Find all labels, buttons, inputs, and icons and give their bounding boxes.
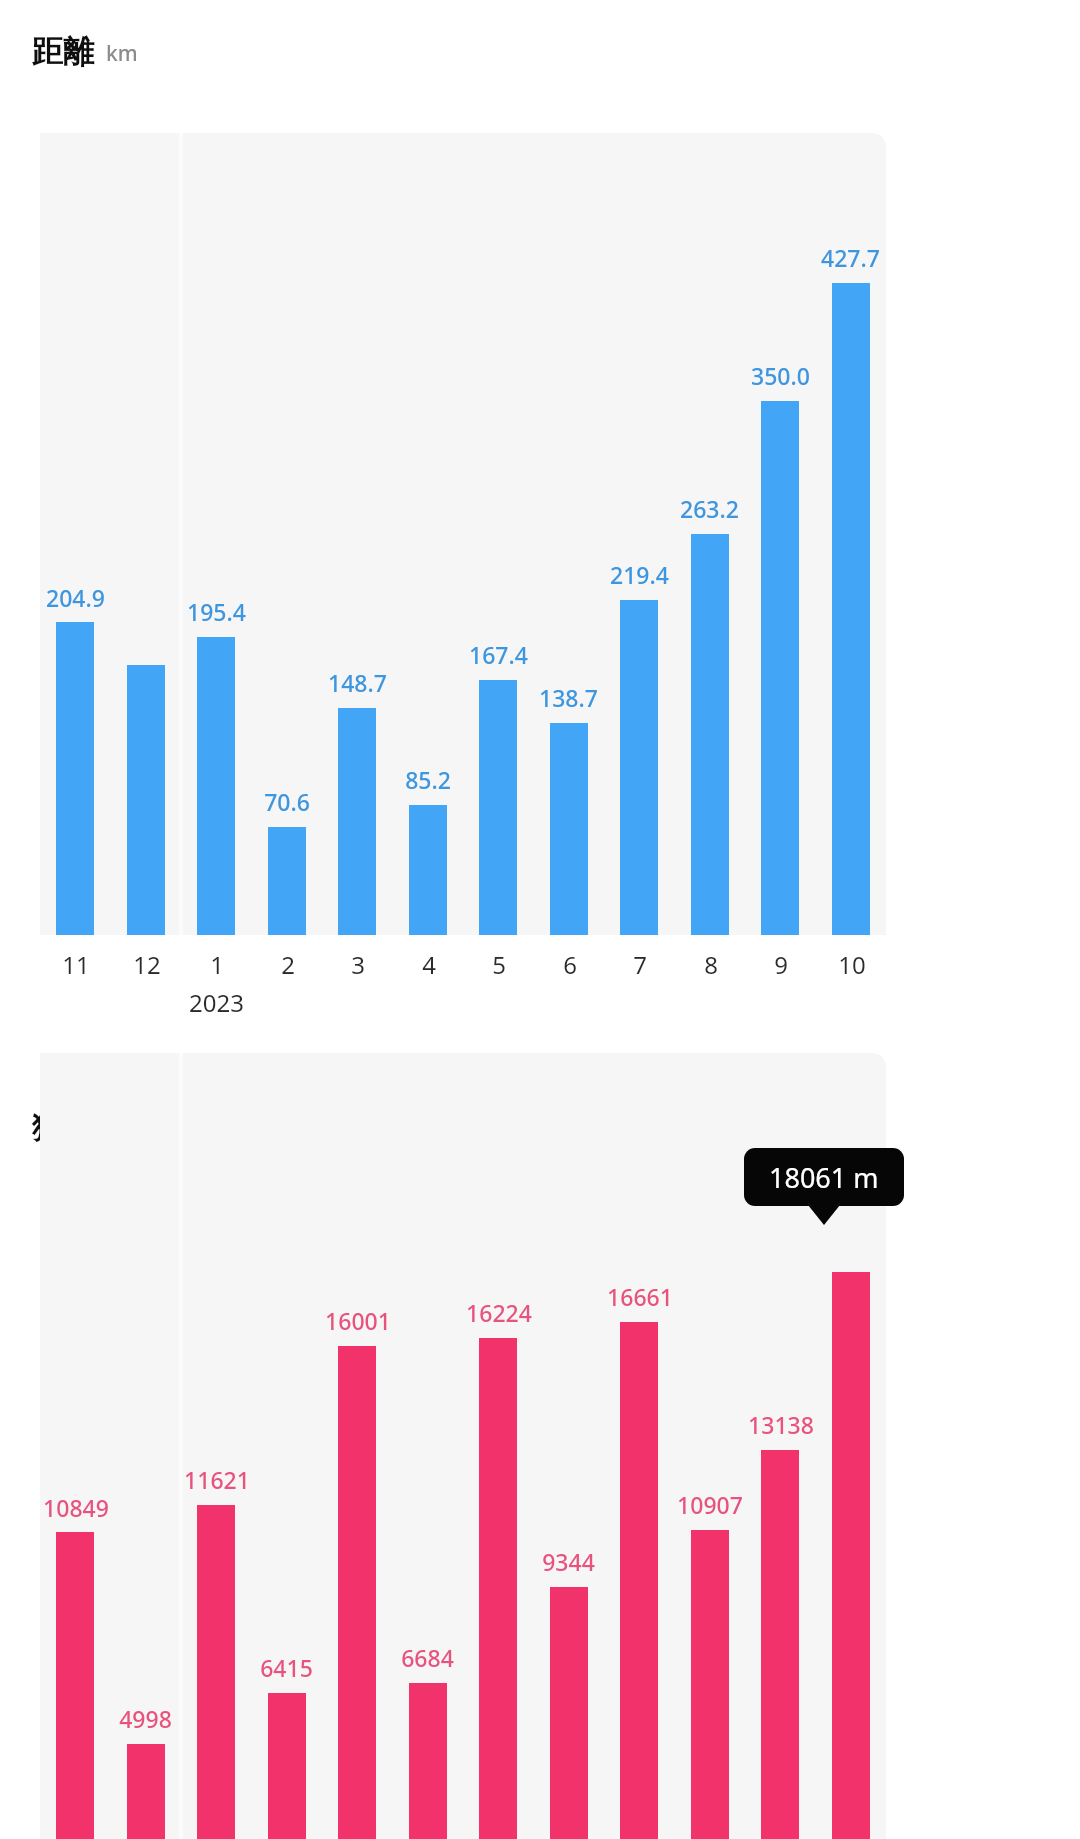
button[interactable] (40, 133, 886, 935)
staticText: 6415 (260, 1652, 313, 1683)
staticText: 3 (351, 948, 365, 981)
staticText: 9 (774, 948, 788, 981)
staticText: 13138 (748, 1409, 814, 1440)
staticText: 9344 (542, 1546, 595, 1577)
staticText: 4 (422, 948, 436, 981)
staticText: 2023 (189, 986, 244, 1019)
staticText: 11621 (184, 1464, 250, 1495)
staticText: 8 (704, 948, 718, 981)
staticText: 4998 (119, 1703, 172, 1734)
button[interactable] (40, 1053, 886, 1839)
staticText: 195.4 (187, 596, 246, 627)
staticText: 6 (563, 948, 577, 981)
staticText: km (106, 39, 138, 68)
staticText: 2 (281, 948, 295, 981)
staticText: 138.7 (539, 682, 598, 713)
staticText: 219.4 (610, 559, 669, 590)
staticText: 16224 (466, 1297, 532, 1328)
staticText: 距離 (32, 32, 94, 71)
staticText: 10849 (43, 1492, 109, 1523)
staticText: 10 (838, 948, 866, 981)
staticText: 16001 (325, 1305, 391, 1336)
staticText: 12 (133, 948, 161, 981)
staticText: 427.7 (821, 242, 880, 273)
staticText: 獲得標高 (32, 1108, 156, 1147)
button[interactable]: 距離 (32, 32, 138, 71)
staticText: 70.6 (264, 786, 310, 817)
staticText: 6684 (401, 1642, 454, 1673)
staticText: 5 (492, 948, 506, 981)
button[interactable]: 18061 m (744, 1148, 904, 1226)
staticText: 11 (62, 948, 90, 981)
staticText: 263.2 (680, 493, 739, 524)
staticText: 148.7 (328, 667, 387, 698)
staticText: 1 (210, 948, 224, 981)
staticText: 10907 (677, 1489, 743, 1520)
staticText: 204.9 (46, 582, 105, 613)
staticText: 7 (633, 948, 647, 981)
staticText: 350.0 (751, 360, 810, 391)
staticText: 16661 (607, 1281, 673, 1312)
staticText: 167.4 (469, 639, 528, 670)
button[interactable]: 獲得標高 (32, 1108, 188, 1147)
staticText: 18061 m (769, 1159, 879, 1196)
staticText: 85.2 (405, 764, 451, 795)
